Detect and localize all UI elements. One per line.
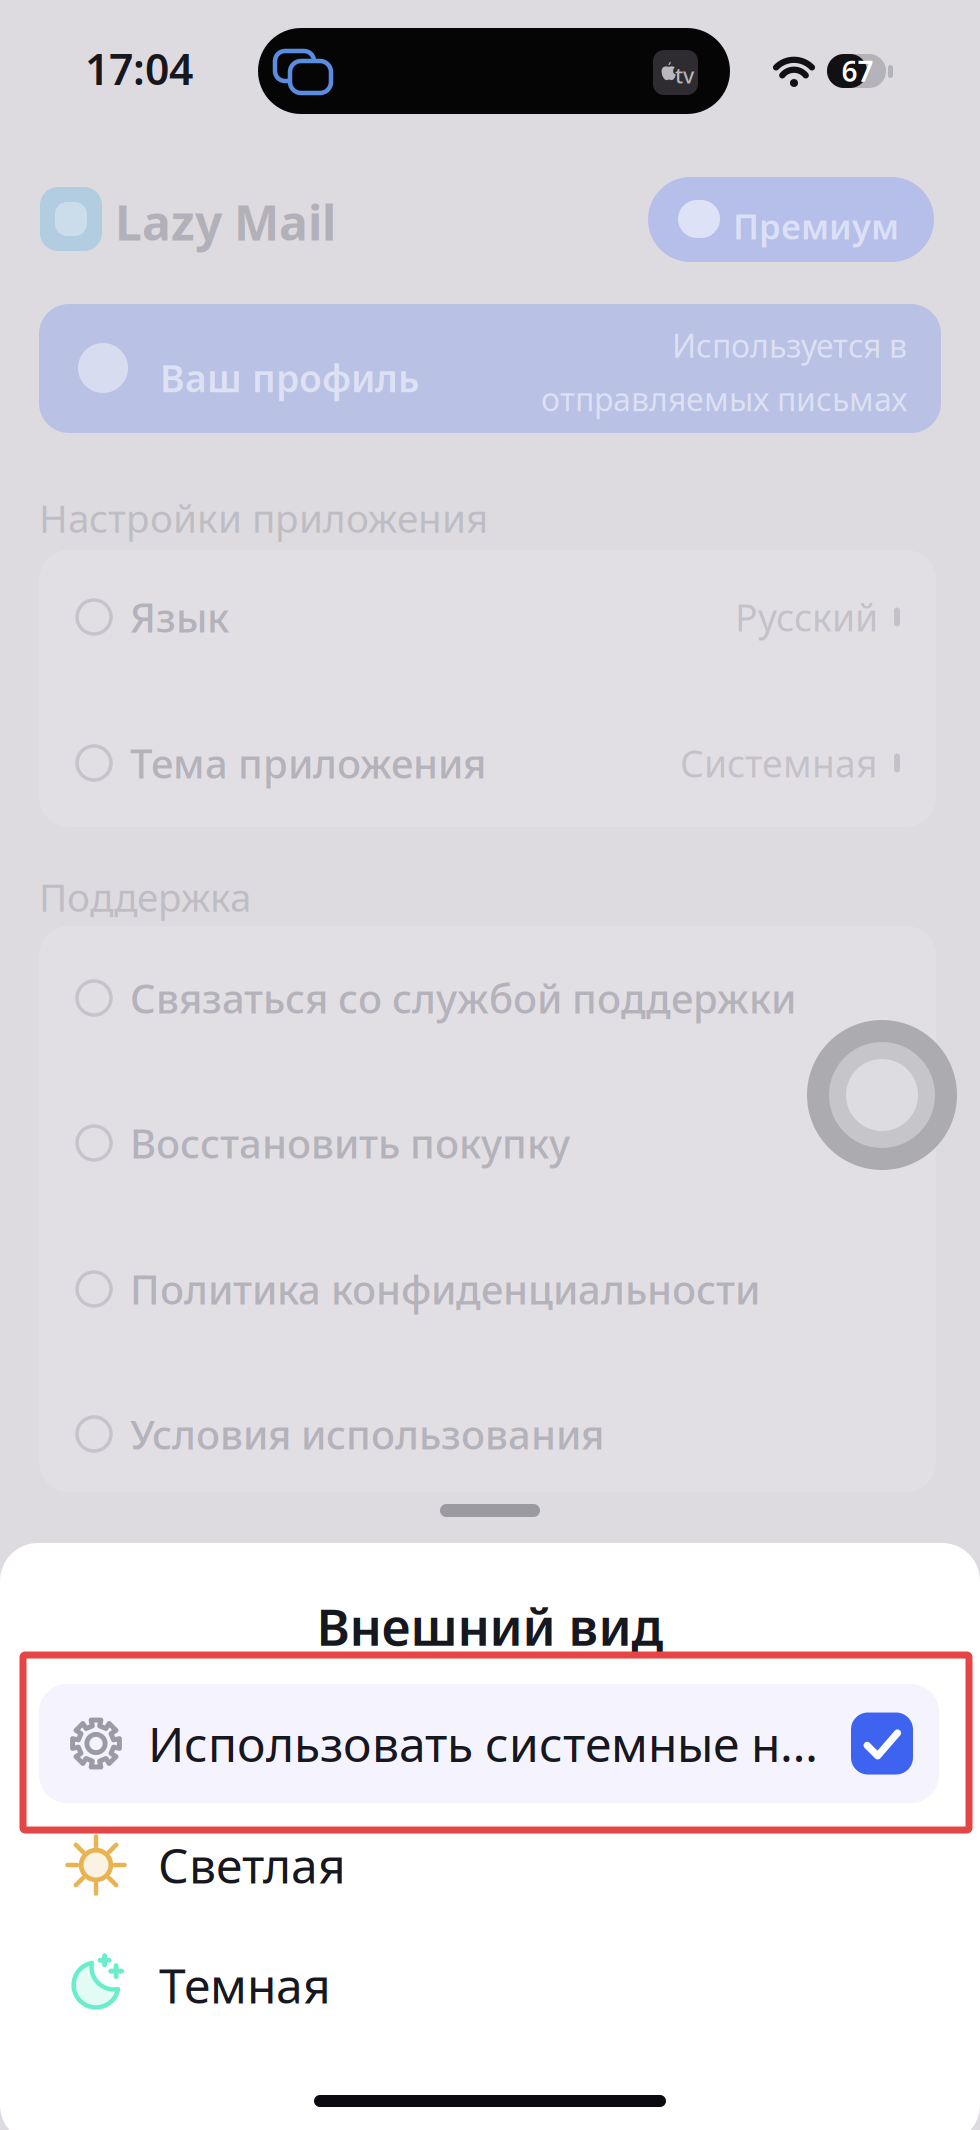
button[interactable]: Светлая bbox=[39, 1813, 939, 1917]
staticText: Lazy Mail bbox=[115, 190, 336, 254]
staticText: Тема приложения bbox=[130, 736, 486, 789]
staticText: Политика конфиденциальности bbox=[130, 1262, 760, 1315]
staticText: Восстановить покупку bbox=[130, 1116, 570, 1169]
staticText: Внешний вид bbox=[316, 1592, 663, 1660]
staticText: Русский bbox=[735, 592, 878, 642]
staticText: Используется в bbox=[672, 324, 907, 366]
staticText: Ваш профиль bbox=[160, 353, 419, 403]
staticText: Условия использования bbox=[130, 1407, 604, 1460]
button[interactable]: Темная bbox=[39, 1933, 939, 2037]
staticText: Настройки приложения bbox=[39, 492, 488, 543]
staticText: Поддержка bbox=[39, 871, 251, 922]
staticText: tv bbox=[675, 61, 694, 89]
staticText: Системная bbox=[680, 738, 878, 788]
staticText: Использовать системные н… bbox=[148, 1712, 818, 1775]
staticText: Премиум bbox=[733, 203, 899, 249]
staticText: Светлая bbox=[158, 1833, 346, 1897]
staticText: 17:04 bbox=[85, 40, 193, 97]
staticText: 67 bbox=[841, 52, 873, 90]
staticText: Язык bbox=[130, 590, 229, 643]
staticText: отправляемых письмах bbox=[541, 377, 907, 420]
staticText: Темная bbox=[159, 1953, 331, 2017]
button[interactable]: Использовать системные н… bbox=[39, 1684, 939, 1803]
staticText: Связаться со службой поддержки bbox=[130, 971, 796, 1024]
